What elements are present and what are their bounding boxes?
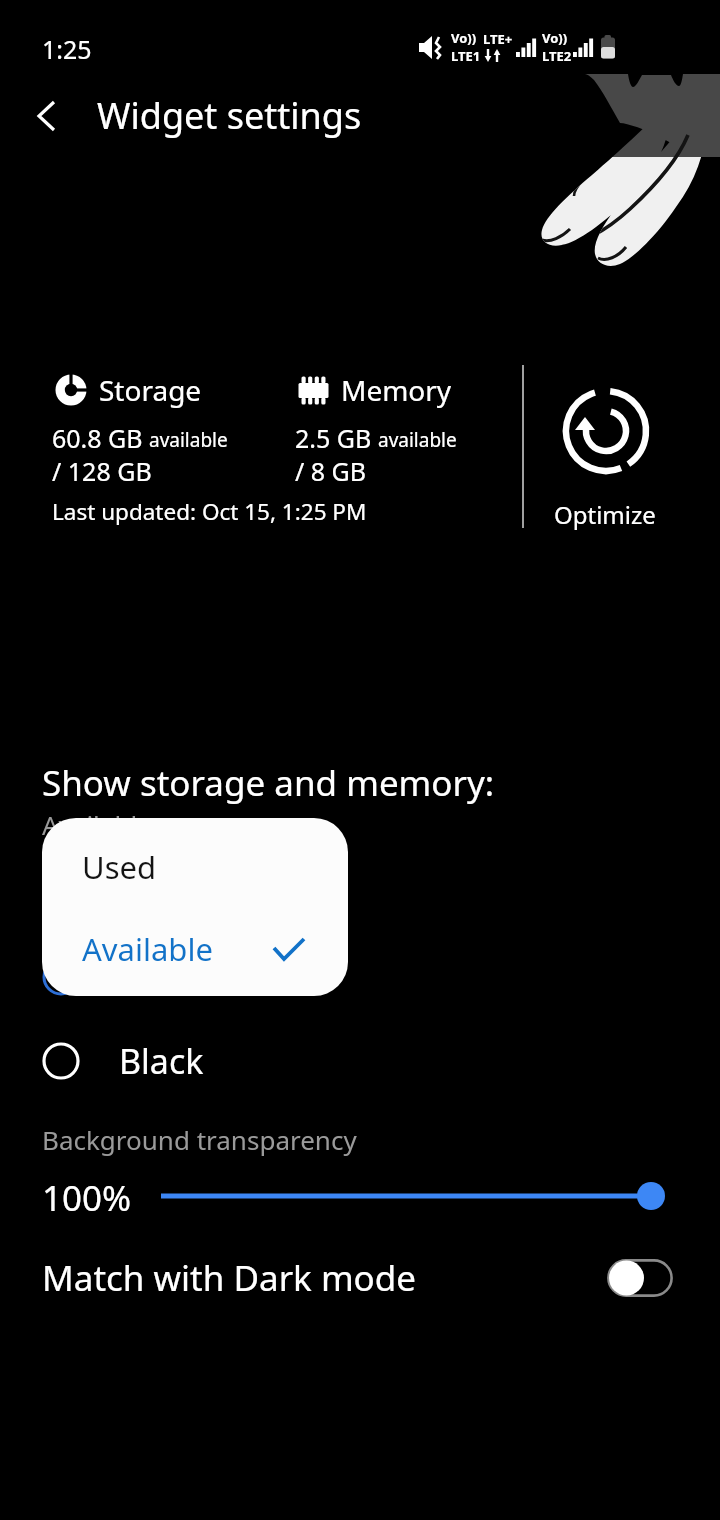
- button[interactable]: Black: [42, 1036, 242, 1086]
- staticText: / 8 GB: [295, 454, 367, 488]
- staticText: LTE2: [542, 47, 572, 65]
- staticText: White: [119, 954, 212, 1000]
- staticText: Optimize: [554, 498, 656, 531]
- staticText: LTE+: [483, 30, 513, 48]
- staticText: 60.8 GB: [52, 421, 143, 455]
- staticText: available: [378, 427, 457, 453]
- staticText: Available: [42, 807, 152, 842]
- staticText: Last updated: Oct 15, 1:25 PM: [52, 496, 367, 527]
- button[interactable]: Match with Dark mode: [42, 1245, 673, 1311]
- staticText: 100%: [42, 1174, 132, 1222]
- button[interactable]: Optimize: [530, 372, 680, 532]
- button[interactable]: Background transparency slider: [155, 1168, 675, 1224]
- staticText: Black: [119, 1038, 204, 1084]
- staticText: LTE1: [451, 47, 481, 65]
- button[interactable]: Used: [82, 836, 322, 898]
- staticText: Match with Dark mode: [42, 1254, 417, 1302]
- staticText: Background transparency: [42, 1122, 357, 1157]
- staticText: Show storage and memory:: [42, 759, 495, 807]
- staticText: / 128 GB: [52, 454, 152, 488]
- staticText: 2.5 GB: [295, 421, 372, 455]
- button[interactable]: Navigate up: [20, 88, 76, 144]
- staticText: Widget settings: [97, 91, 362, 140]
- button[interactable]: White: [42, 952, 242, 1002]
- button[interactable]: Available: [82, 918, 306, 980]
- staticText: Available: [82, 928, 213, 970]
- staticText: Vo)): [542, 29, 568, 47]
- staticText: available: [149, 427, 228, 453]
- staticText: Storage: [99, 371, 202, 409]
- staticText: Vo)): [451, 29, 477, 47]
- staticText: Memory: [341, 371, 452, 409]
- staticText: Used: [82, 846, 157, 888]
- staticText: 1:25: [42, 32, 92, 66]
